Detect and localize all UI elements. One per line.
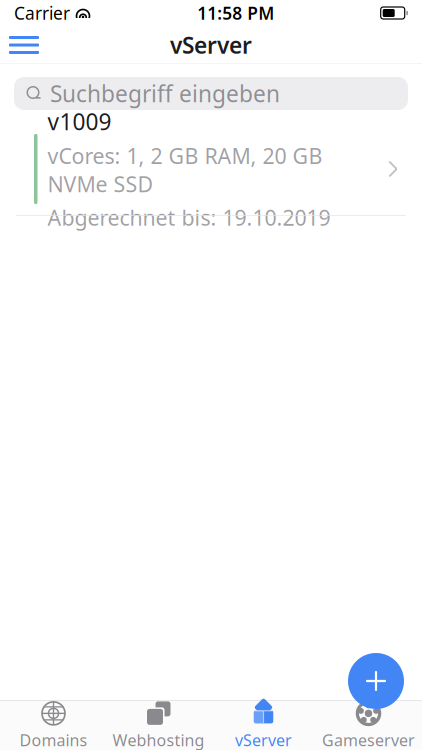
button[interactable]: Add server: [348, 653, 404, 709]
staticText: vCores: 1, 2 GB RAM, 20 GB NVMe SSD: [47, 142, 322, 198]
button[interactable]: Menu: [2, 25, 46, 65]
staticText: Gameserver: [322, 729, 415, 750]
staticText: 11:58 PM: [197, 1, 274, 24]
staticText: vServer: [235, 729, 292, 750]
staticText: Domains: [19, 729, 87, 750]
staticText: Suchbegriff eingeben: [50, 78, 280, 108]
button[interactable]: Gameserver: [316, 701, 421, 750]
staticText: Abgerechnet bis: 19.10.2019: [47, 203, 330, 231]
button[interactable]: v1009: [0, 123, 422, 215]
staticText: Carrier: [14, 1, 70, 24]
button[interactable]: Webhosting: [106, 701, 211, 750]
staticText: vServer: [170, 30, 252, 60]
button[interactable]: vServer: [211, 701, 316, 750]
staticText: Webhosting: [112, 729, 204, 750]
button[interactable]: Domains: [1, 701, 106, 750]
staticText: v1009: [47, 106, 111, 137]
button[interactable]: Suchbegriff eingeben: [14, 77, 408, 110]
